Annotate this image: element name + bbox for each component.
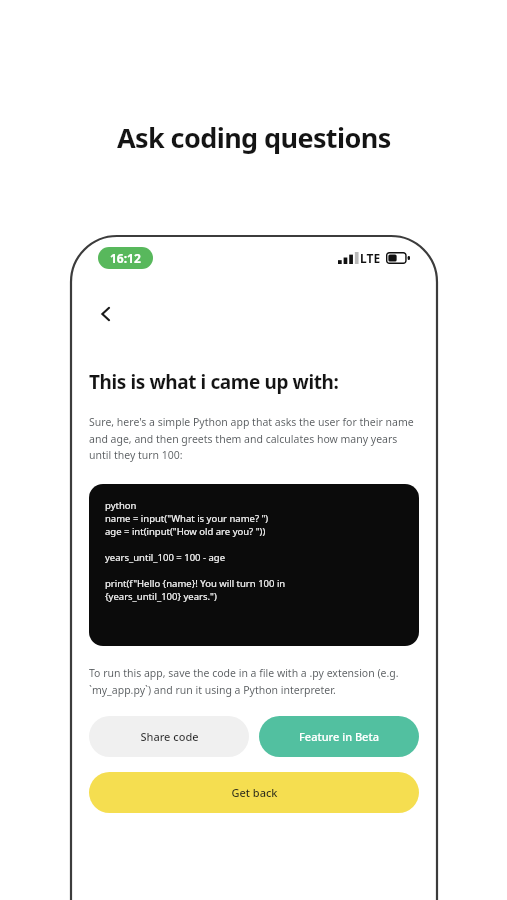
staticText: To run this app, save the code in a file… bbox=[89, 666, 419, 697]
staticText: Ask coding questions bbox=[117, 119, 391, 156]
staticText: Share code bbox=[140, 729, 199, 744]
staticText: python bbox=[105, 499, 137, 512]
staticText: Feature in Beta bbox=[299, 729, 379, 744]
staticText: LTE bbox=[360, 250, 381, 266]
staticText: Sure, here's a simple Python app that as… bbox=[89, 415, 419, 462]
button[interactable]: Share code bbox=[89, 716, 249, 757]
staticText: print(f"Hello {name}! You will turn 100 … bbox=[105, 577, 286, 590]
staticText: age = int(input("How old are you? ")) bbox=[105, 525, 266, 538]
button[interactable]: Feature in Beta bbox=[259, 716, 419, 757]
button[interactable]: Back bbox=[85, 293, 127, 335]
staticText: This is what i came up with: bbox=[89, 369, 339, 395]
staticText: 16:12 bbox=[110, 250, 141, 266]
staticText: {years_until_100} years.") bbox=[105, 590, 217, 603]
staticText: years_until_100 = 100 - age bbox=[105, 551, 226, 564]
button[interactable]: Get back bbox=[89, 772, 419, 813]
staticText: name = input("What is your name? ") bbox=[105, 512, 269, 525]
staticText: Get back bbox=[231, 785, 278, 800]
